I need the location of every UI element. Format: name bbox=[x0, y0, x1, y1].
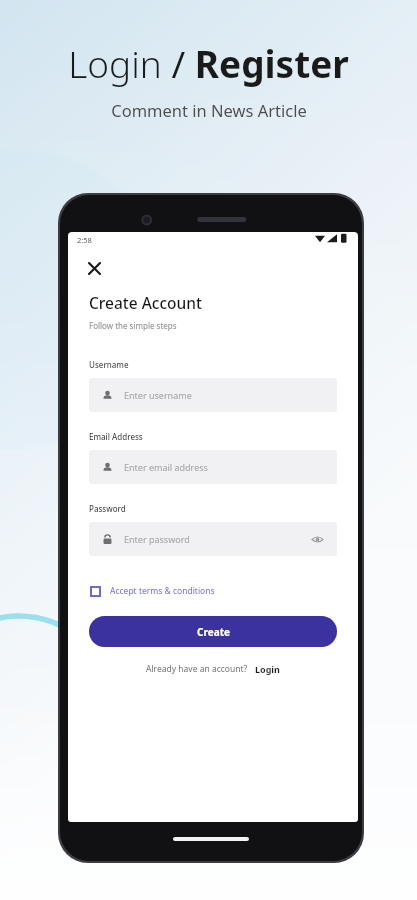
staticText: Accept terms & conditions bbox=[110, 585, 215, 597]
button[interactable]: Create bbox=[89, 616, 337, 647]
staticText: Email Address bbox=[89, 431, 143, 442]
staticText: Username bbox=[89, 359, 129, 370]
staticText: Enter password bbox=[124, 533, 190, 545]
button[interactable]: Enter username bbox=[89, 378, 337, 412]
staticText: Comment in News Article bbox=[111, 99, 307, 121]
staticText: Login / Register bbox=[68, 38, 349, 88]
staticText: Enter username bbox=[124, 389, 192, 401]
staticText: Create bbox=[197, 625, 230, 639]
staticText: Create Account bbox=[89, 292, 202, 313]
staticText: Enter email address bbox=[124, 461, 208, 473]
staticText: Password bbox=[89, 503, 126, 514]
button[interactable]: Accept terms & conditions bbox=[89, 583, 216, 599]
button[interactable]: Login bbox=[255, 663, 280, 675]
button[interactable]: Show password bbox=[311, 533, 324, 546]
staticText: Follow the simple steps bbox=[89, 320, 177, 331]
button[interactable]: Enter password bbox=[89, 522, 337, 556]
button[interactable]: Enter email address bbox=[89, 450, 337, 484]
staticText: Login bbox=[255, 663, 280, 675]
staticText: Already have an account? bbox=[146, 663, 248, 675]
button[interactable]: Close bbox=[82, 256, 106, 280]
staticText: 2:58 bbox=[77, 235, 92, 245]
